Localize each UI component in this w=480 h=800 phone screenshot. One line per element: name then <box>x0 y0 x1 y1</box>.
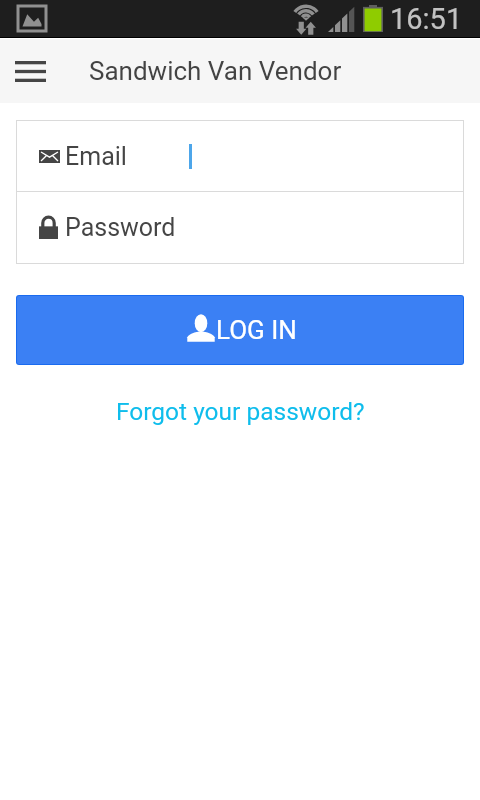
button[interactable]: Forgot your password? <box>112 395 369 428</box>
staticText: 16:51 <box>390 2 463 36</box>
button[interactable]: Password <box>17 192 463 263</box>
staticText: Password <box>65 213 176 242</box>
button[interactable]: LOG IN <box>17 296 463 364</box>
staticText: LOG IN <box>216 315 297 345</box>
button[interactable]: Open navigation menu <box>5 46 55 96</box>
button[interactable]: Email <box>17 121 463 191</box>
staticText: Email <box>65 142 127 171</box>
staticText: Sandwich Van Vendor <box>89 56 342 86</box>
